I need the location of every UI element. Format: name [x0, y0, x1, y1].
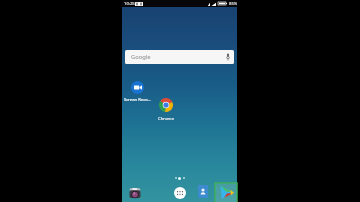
button[interactable]: Camera	[128, 186, 142, 200]
button[interactable]: Screen Reco…	[122, 81, 153, 105]
staticText: 10:25 AM	[124, 1, 143, 7]
staticText: Google	[131, 53, 151, 61]
staticText: Screen Reco…	[122, 97, 153, 103]
button[interactable]: Google	[125, 50, 234, 64]
staticText: 85%	[229, 1, 238, 7]
button[interactable]: Contacts	[198, 185, 208, 198]
button[interactable]: Chrome	[151, 98, 181, 122]
button[interactable]: Play Store	[215, 183, 237, 202]
staticText: Chrome	[151, 115, 181, 121]
button[interactable]: Apps	[174, 187, 186, 199]
